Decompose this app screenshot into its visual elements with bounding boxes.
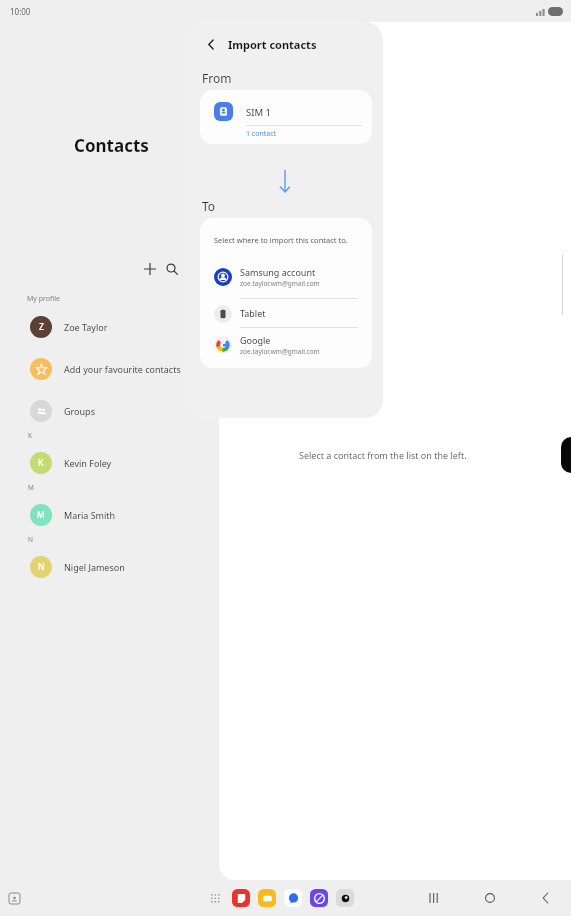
button[interactable]: Screenshot	[4, 888, 24, 908]
staticText: Contacts	[74, 134, 149, 157]
staticText: Nigel Jameson	[64, 561, 125, 573]
staticText: N	[28, 535, 33, 544]
staticText: Import contacts	[228, 37, 317, 52]
staticText: My profile	[27, 294, 60, 304]
staticText: To	[202, 198, 216, 214]
staticText: Kevin Foley	[64, 457, 112, 469]
button[interactable]: Messages	[284, 889, 302, 907]
button[interactable]: M	[0, 500, 219, 530]
staticText: From	[202, 70, 232, 86]
staticText: Select where to import this contact to.	[214, 235, 348, 245]
button[interactable]: Recents	[423, 887, 445, 909]
button[interactable]: Samsung account	[200, 260, 372, 299]
staticText: Add your favourite contacts	[64, 363, 181, 375]
button[interactable]: Search	[161, 258, 183, 280]
button[interactable]: Google	[200, 328, 372, 367]
staticText: SIM 1	[246, 106, 271, 119]
button[interactable]: Back	[202, 35, 220, 53]
button[interactable]: Groups	[0, 396, 219, 426]
button[interactable]: Apps	[206, 889, 224, 907]
staticText: M	[37, 509, 45, 521]
staticText: Z	[39, 321, 44, 333]
button[interactable]: Add contact	[139, 258, 161, 280]
button[interactable]: Add your favourite contacts	[0, 354, 219, 384]
staticText: Tablet	[240, 307, 266, 319]
button[interactable]: Internet	[310, 889, 328, 907]
staticText: Samsung account	[240, 266, 316, 278]
staticText: Google	[240, 334, 271, 346]
staticText: 10:00	[10, 6, 31, 17]
staticText: K	[38, 457, 44, 469]
staticText: Groups	[64, 405, 95, 417]
button[interactable]: N	[0, 552, 219, 582]
staticText: 1 contact	[246, 129, 277, 139]
button[interactable]: K	[0, 448, 219, 478]
staticText: N	[38, 561, 45, 573]
button[interactable]: Home	[479, 887, 501, 909]
button[interactable]: Tablet	[200, 299, 372, 328]
staticText: zoe.taylor.wm@gmail.com	[240, 347, 320, 356]
staticText: Zoe Taylor	[64, 321, 108, 333]
staticText: Maria Smith	[64, 509, 116, 521]
staticText: Select a contact from the list on the le…	[299, 449, 467, 461]
button[interactable]: SIM 1	[200, 90, 372, 144]
staticText: K	[28, 431, 33, 440]
staticText: M	[28, 483, 34, 492]
staticText: zoe.taylor.wm@gmail.com	[240, 279, 320, 288]
button[interactable]: Back	[535, 887, 557, 909]
button[interactable]: Camera	[336, 889, 354, 907]
button[interactable]: My Files	[258, 889, 276, 907]
button[interactable]: Z	[0, 312, 219, 342]
button[interactable]: Notes	[232, 889, 250, 907]
